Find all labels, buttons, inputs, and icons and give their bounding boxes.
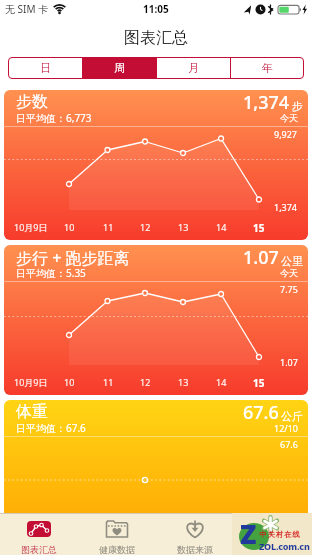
staticText: Z — [240, 515, 257, 552]
staticText: 9,927 — [274, 128, 298, 140]
staticText: 1,374 — [243, 90, 290, 115]
staticText: 7.75 — [280, 283, 298, 295]
staticText: 年 — [262, 61, 273, 75]
staticText: 10月9日 — [14, 221, 48, 233]
staticText: 今天 — [280, 112, 298, 123]
staticText: 1.07 — [243, 245, 279, 270]
staticText: 日平均值：5.35 — [16, 266, 86, 280]
staticText: 1,374 — [274, 201, 298, 213]
staticText: 13 — [178, 376, 189, 388]
staticText: 67.6 — [243, 400, 279, 425]
button[interactable]: 步行 + 跑步距离 — [4, 245, 308, 395]
staticText: 公里 — [281, 254, 303, 268]
button[interactable]: 健康数据 — [78, 513, 156, 555]
staticText: 健康数据 — [99, 544, 135, 555]
staticText: 日平均值：6,773 — [16, 111, 92, 125]
staticText: 今天 — [280, 267, 298, 278]
staticText: 数据来源 — [177, 544, 213, 555]
staticText: 公斤 — [281, 409, 303, 423]
staticText: 步数 — [16, 92, 48, 112]
staticText: 11 — [103, 221, 114, 233]
button[interactable]: 年 — [231, 57, 304, 79]
staticText: 步 — [292, 99, 303, 113]
staticText: 67.6 — [280, 438, 298, 450]
staticText: 12 — [140, 221, 151, 233]
button[interactable]: 图表汇总 — [0, 513, 78, 555]
button[interactable]: 周 — [83, 57, 156, 79]
staticText: 日平均值：67.6 — [16, 421, 86, 435]
staticText: 11:05 — [143, 2, 169, 16]
staticText: 日 — [40, 61, 51, 75]
staticText: 12/10 — [274, 422, 298, 434]
button[interactable]: 体重 — [4, 400, 308, 550]
staticText: 月 — [188, 61, 199, 75]
staticText: 11 — [103, 376, 114, 388]
staticText: 15 — [253, 221, 265, 235]
staticText: 1.07 — [280, 356, 298, 368]
staticText: 15 — [253, 376, 265, 390]
staticText: 图表汇总 — [124, 28, 188, 48]
staticText: 14 — [216, 221, 227, 233]
button[interactable]: 月 — [157, 57, 230, 79]
staticText: 体重 — [16, 402, 48, 422]
staticText: 图表汇总 — [21, 544, 57, 555]
staticText: 13 — [178, 221, 189, 233]
staticText: 10 — [64, 221, 75, 233]
staticText: 无 SIM 卡 — [5, 2, 49, 16]
staticText: 步行 + 跑步距离 — [16, 247, 130, 269]
staticText: 周 — [114, 61, 125, 75]
button[interactable]: 医疗急救卡 — [234, 513, 312, 555]
staticText: 10 — [64, 376, 75, 388]
button[interactable]: 步数 — [4, 90, 308, 240]
staticText: 中关村在线 — [259, 530, 300, 539]
button[interactable]: 数据来源 — [156, 513, 234, 555]
button[interactable]: 日 — [8, 57, 82, 79]
staticText: 12 — [140, 376, 151, 388]
staticText: 10月9日 — [14, 376, 48, 388]
staticText: 医疗急救卡 — [251, 544, 296, 555]
staticText: 14 — [216, 376, 227, 388]
staticText: ZOL.com.cn — [259, 540, 310, 552]
